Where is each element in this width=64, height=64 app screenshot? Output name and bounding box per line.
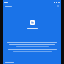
button[interactable]: App logo bbox=[30, 20, 35, 25]
button[interactable] bbox=[5, 6, 12, 7]
button[interactable] bbox=[5, 62, 14, 63]
